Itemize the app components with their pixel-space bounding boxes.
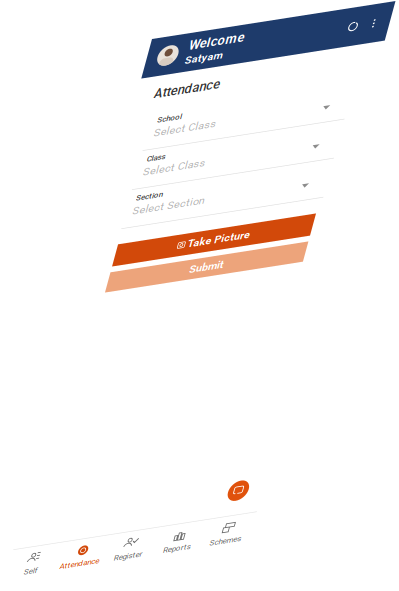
staticText: Select Section — [181, 215, 254, 229]
staticText: School — [181, 123, 206, 132]
button[interactable]: Class — [152, 158, 398, 199]
button[interactable]: Take Picture — [175, 255, 375, 278]
staticText: Select Class — [181, 175, 244, 188]
staticText: Section — [181, 204, 208, 213]
button[interactable]: Section — [152, 199, 398, 239]
staticText: Select Class — [181, 134, 244, 148]
button[interactable]: Attendance — [152, 80, 398, 118]
staticText: Welcome — [193, 44, 249, 60]
button[interactable]: School — [152, 118, 398, 158]
staticText: Class — [181, 163, 200, 173]
staticText: Take Picture — [248, 261, 311, 273]
staticText: Satyam — [193, 61, 232, 74]
staticText: Attendance — [170, 91, 237, 107]
